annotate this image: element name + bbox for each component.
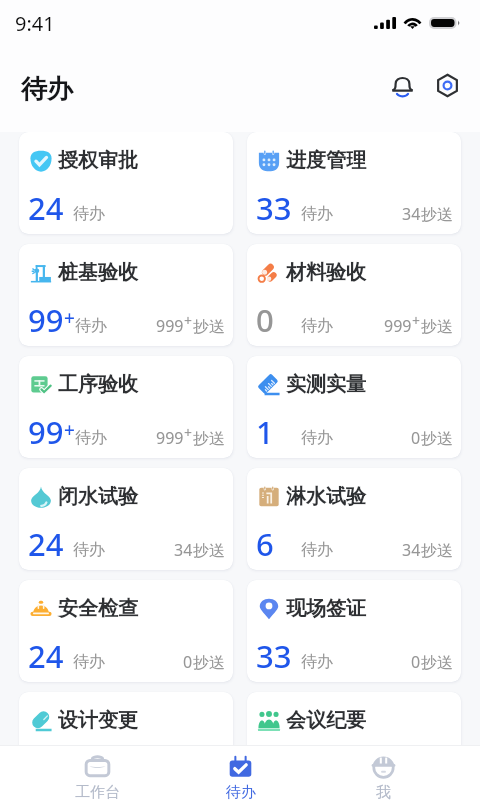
button[interactable]: 工作台: [25, 746, 169, 800]
staticText: 抄送: [193, 429, 225, 449]
button[interactable]: 工序验收: [19, 356, 233, 458]
staticText: 闭水试验: [58, 484, 138, 509]
staticText: 淋水试验: [286, 484, 366, 509]
staticText: 进度管理: [286, 148, 366, 173]
staticText: 材料验收: [286, 260, 366, 285]
staticText: 抄送: [193, 541, 225, 561]
staticText: 待办: [73, 204, 105, 224]
staticText: 工序验收: [58, 372, 138, 397]
staticText: 抄送: [193, 653, 225, 673]
staticText: 24: [28, 523, 64, 565]
staticText: 安全检查: [58, 596, 138, 621]
staticText: 999: [384, 315, 412, 337]
button[interactable]: 进度管理: [247, 132, 461, 234]
button[interactable]: 闭水试验: [19, 468, 233, 570]
staticText: 0: [411, 651, 421, 673]
staticText: 0: [256, 299, 274, 341]
staticText: 33: [256, 187, 292, 229]
staticText: 抄送: [421, 541, 453, 561]
staticText: 24: [28, 187, 64, 229]
staticText: 授权审批: [58, 148, 138, 173]
staticText: 34: [174, 539, 193, 561]
staticText: 34: [402, 539, 421, 561]
staticText: +: [412, 311, 421, 330]
staticText: 0: [411, 427, 421, 449]
staticText: 抄送: [193, 317, 225, 337]
staticText: 工作台: [75, 783, 120, 800]
staticText: 0: [183, 651, 193, 673]
staticText: 待办: [301, 652, 333, 672]
staticText: 实测实量: [286, 372, 366, 397]
button[interactable]: 授权审批: [19, 132, 233, 234]
staticText: 待办: [301, 204, 333, 224]
staticText: 999: [156, 315, 184, 337]
staticText: 待办: [21, 73, 73, 106]
staticText: 待办: [75, 428, 107, 448]
staticText: 桩基验收: [58, 260, 138, 285]
button[interactable]: 安全检查: [19, 580, 233, 682]
staticText: +: [64, 417, 75, 443]
staticText: 待办: [301, 316, 333, 336]
staticText: 现场签证: [286, 596, 366, 621]
button[interactable]: 实测实量: [247, 356, 461, 458]
staticText: 待办: [75, 316, 107, 336]
staticText: 33: [256, 635, 292, 677]
staticText: 9:41: [15, 10, 55, 37]
staticText: 6: [256, 523, 274, 565]
button[interactable]: 会议纪要: [247, 692, 461, 794]
button[interactable]: 设计变更: [19, 692, 233, 794]
staticText: 99: [28, 411, 64, 453]
button[interactable]: Settings: [431, 69, 463, 101]
staticText: 待办: [73, 652, 105, 672]
staticText: +: [184, 311, 193, 330]
staticText: +: [184, 423, 193, 442]
button[interactable]: 我: [312, 746, 455, 800]
button[interactable]: 现场签证: [247, 580, 461, 682]
staticText: 待办: [73, 540, 105, 560]
staticText: 99: [28, 299, 64, 341]
staticText: 抄送: [421, 205, 453, 225]
staticText: +: [64, 305, 75, 331]
button[interactable]: 待办: [169, 746, 312, 800]
staticText: 24: [28, 635, 64, 677]
staticText: 待办: [301, 428, 333, 448]
staticText: 34: [402, 203, 421, 225]
staticText: 抄送: [421, 429, 453, 449]
staticText: 1: [256, 411, 274, 453]
staticText: 999: [156, 427, 184, 449]
button[interactable]: 桩基验收: [19, 244, 233, 346]
staticText: 抄送: [421, 317, 453, 337]
button[interactable]: 淋水试验: [247, 468, 461, 570]
staticText: 我: [376, 783, 391, 800]
staticText: 待办: [301, 540, 333, 560]
button[interactable]: Notifications: [386, 69, 418, 101]
staticText: 抄送: [421, 653, 453, 673]
staticText: 会议纪要: [286, 708, 366, 733]
button[interactable]: 材料验收: [247, 244, 461, 346]
staticText: 设计变更: [58, 708, 138, 733]
staticText: 待办: [226, 783, 256, 800]
